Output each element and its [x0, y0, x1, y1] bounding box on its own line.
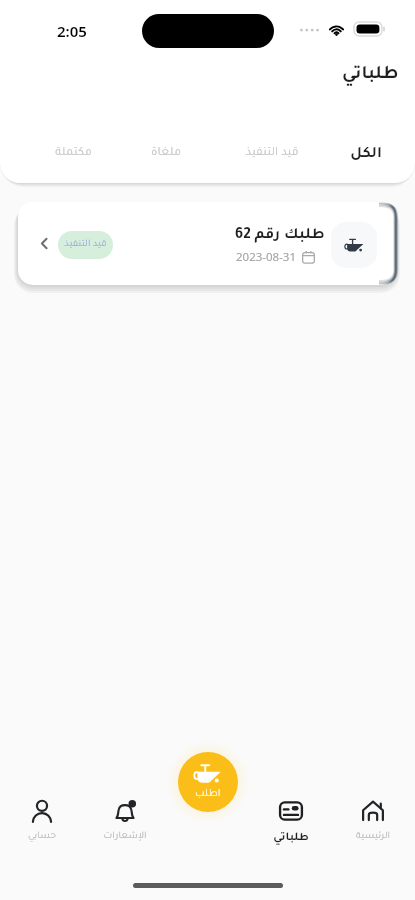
- staticText: ملغاة: [151, 147, 181, 160]
- staticText: قيد التنفيذ: [245, 147, 299, 160]
- other: My orders: [278, 798, 304, 824]
- staticText: حسابي: [0, 832, 84, 842]
- other: Home: [360, 798, 386, 824]
- staticText: اطلب: [195, 789, 221, 800]
- staticText: الكل: [350, 147, 382, 163]
- staticText: طلباتي: [342, 66, 399, 85]
- staticText: طلبك رقم 62: [235, 228, 325, 244]
- button[interactable]: الكل: [316, 136, 415, 174]
- staticText: مكتملة: [55, 147, 92, 160]
- button[interactable]: My account: [0, 798, 84, 842]
- button[interactable]: Open order: [18, 202, 396, 285]
- other: Open order: [40, 237, 48, 250]
- staticText: الرئيسية: [331, 832, 415, 842]
- staticText: 2023-08-31: [236, 249, 297, 265]
- button[interactable]: قيد التنفيذ: [222, 134, 322, 172]
- staticText: طلباتي: [249, 832, 333, 844]
- button[interactable]: Notifications: [83, 798, 167, 842]
- button[interactable]: اطلب: [178, 752, 238, 812]
- button[interactable]: My orders: [249, 798, 333, 844]
- button[interactable]: ملغاة: [116, 134, 216, 172]
- staticText: قيد التنفيذ: [64, 240, 107, 250]
- staticText: 2:05: [57, 21, 87, 41]
- button[interactable]: Home: [331, 798, 415, 842]
- staticText: الإشعارات: [83, 832, 167, 842]
- other: Notifications: [112, 798, 138, 824]
- other: My account: [29, 798, 55, 824]
- button[interactable]: مكتملة: [23, 134, 123, 172]
